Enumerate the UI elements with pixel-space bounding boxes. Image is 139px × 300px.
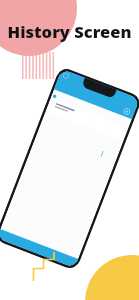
button[interactable]: History Screen app mockup (0, 0, 139, 300)
